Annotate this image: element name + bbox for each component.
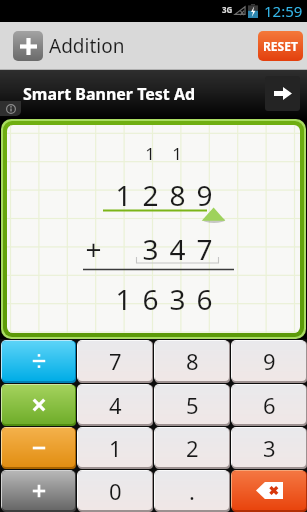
staticText: RESET [263,38,298,54]
staticText: 5 [186,390,199,420]
button[interactable]: Delete [231,470,306,511]
button[interactable]: RESET [258,31,303,61]
button[interactable]: 3 [231,427,306,468]
button[interactable]: 4 [77,384,152,425]
button[interactable] [1,384,75,425]
staticText: 8 [186,346,199,376]
button[interactable]: 8 [154,340,229,382]
button[interactable]: 9 [231,340,306,382]
staticText: 2 [186,433,199,463]
staticText: 1 [109,433,122,463]
staticText: 3 [169,280,186,316]
staticText: 4 [109,390,122,420]
staticText: 1 [145,142,155,165]
staticText: 6 [263,390,276,420]
staticText: 1 [115,176,132,212]
button[interactable]: Open ad [265,76,300,111]
staticText: 0 [109,476,122,506]
staticText: . [189,476,195,506]
staticText: 3G [222,4,233,15]
staticText: 9 [263,346,276,376]
staticText: 3 [263,433,276,463]
staticText: 3 [142,230,159,266]
button[interactable]: 0 [77,470,152,511]
button[interactable] [1,427,75,468]
staticText: 4 [169,230,186,266]
button[interactable] [1,340,75,382]
staticText: Addition [49,33,125,59]
button[interactable]: 5 [154,384,229,425]
button[interactable]: Addition mode [13,31,43,61]
staticText: 6 [142,280,159,316]
staticText: 2 [142,176,159,212]
staticText: 6 [196,280,213,316]
staticText: 9 [196,176,213,212]
button[interactable]: 1 [77,427,152,468]
button[interactable]: 6 [231,384,306,425]
staticText: 7 [196,230,213,266]
staticText: 7 [109,346,122,376]
staticText: 1 [172,142,182,165]
button[interactable]: Smart Banner Test Ad [0,70,307,119]
button[interactable]: 7 [77,340,152,382]
button[interactable]: . [154,470,229,511]
staticText: Smart Banner Test Ad [23,83,196,105]
staticText: 1 [115,280,132,316]
staticText: 12:59 [264,1,303,21]
staticText: + [85,230,102,266]
staticText: 8 [169,176,186,212]
button[interactable]: 2 [154,427,229,468]
button[interactable] [1,470,75,511]
